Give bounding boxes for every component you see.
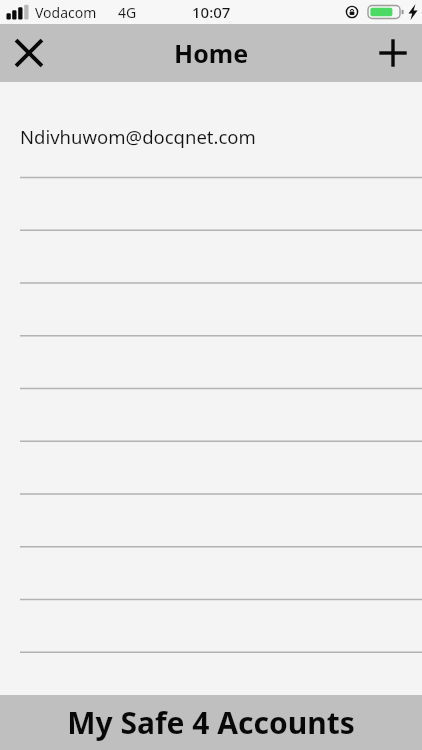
button[interactable]: [0, 337, 422, 390]
button[interactable]: [0, 549, 422, 602]
staticText: My Safe 4 Accounts: [67, 702, 355, 743]
staticText: Vodacom: [35, 3, 97, 22]
button[interactable]: [0, 390, 422, 443]
button[interactable]: [0, 496, 422, 549]
button[interactable]: Close: [0, 24, 58, 82]
staticText: Ndivhuwom@docqnet.com: [20, 124, 256, 149]
staticText: 4G: [118, 3, 137, 22]
staticText: 10:07: [192, 2, 231, 22]
button[interactable]: [0, 231, 422, 284]
button[interactable]: [0, 602, 422, 655]
button[interactable]: [0, 178, 422, 231]
button[interactable]: [0, 125, 422, 178]
staticText: Home: [174, 36, 249, 70]
button[interactable]: [0, 284, 422, 337]
button[interactable]: Add: [364, 24, 422, 82]
button[interactable]: My Safe 4 Accounts: [0, 695, 422, 750]
button[interactable]: [0, 443, 422, 496]
